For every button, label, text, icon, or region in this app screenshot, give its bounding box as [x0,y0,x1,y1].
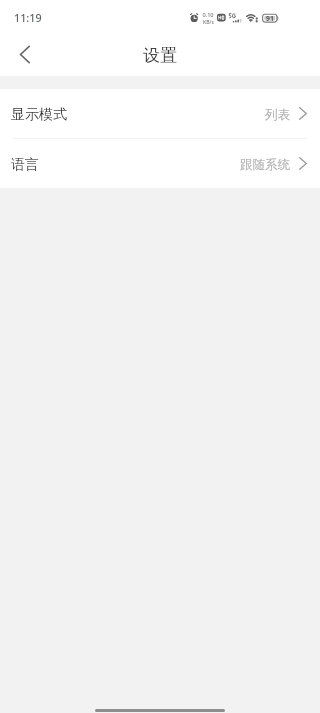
staticText: KB/s [203,19,214,26]
button[interactable]: 语言 [0,139,320,188]
staticText: 91 [266,14,274,23]
staticText: 显示模式 [11,106,67,124]
button[interactable]: Back [0,36,44,76]
staticText: 跟随系统 [240,157,290,173]
staticText: 11:19 [14,10,42,25]
staticText: 设置 [143,45,177,66]
staticText: 列表 [265,107,290,123]
button[interactable]: 显示模式 [0,89,320,138]
staticText: 语言 [11,156,39,174]
staticText: 0.10 [202,11,214,19]
